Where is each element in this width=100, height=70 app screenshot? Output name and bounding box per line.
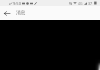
staticText: 37 [88,1,93,6]
button[interactable]: Back [0,6,14,20]
button[interactable]: 消息 [16,6,26,20]
staticText: 4G [78,1,83,6]
button[interactable]: More [95,59,100,70]
staticText: 9:50 [13,1,21,6]
staticText: 消息 [16,10,26,16]
